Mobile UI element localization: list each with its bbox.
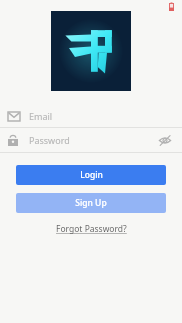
staticText: Login — [80, 169, 103, 181]
button[interactable]: Password — [0, 128, 182, 152]
button[interactable]: Toggle password visibility — [156, 131, 174, 149]
button[interactable]: Login — [16, 165, 166, 185]
button[interactable]: Sign Up — [16, 193, 166, 213]
button[interactable]: Email — [0, 105, 182, 127]
other: Email — [8, 112, 20, 121]
staticText: Password — [29, 134, 70, 146]
staticText: Email — [29, 110, 53, 122]
staticText: Forgot Password? — [56, 223, 127, 235]
other: Password — [8, 135, 18, 146]
staticText: Sign Up — [75, 197, 107, 209]
button[interactable]: Forgot Password? — [50, 221, 133, 237]
